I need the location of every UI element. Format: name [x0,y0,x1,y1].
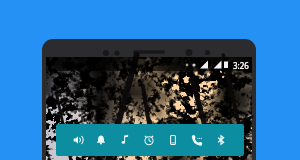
button[interactable]: Alarm [137,124,161,156]
staticText: 3:26 [233,60,249,71]
button[interactable]: Notifications [89,124,113,156]
button[interactable]: Music [113,124,137,156]
button[interactable]: Call [185,124,209,156]
button[interactable]: Bluetooth [209,124,233,156]
button[interactable]: Device [161,124,185,156]
button[interactable]: Volume [66,124,89,156]
